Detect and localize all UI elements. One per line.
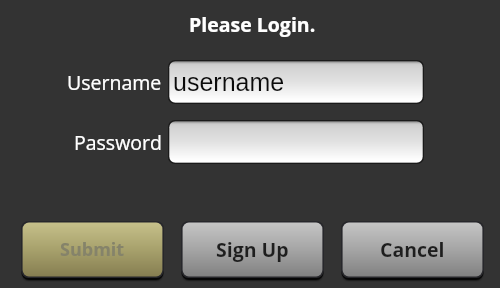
staticText: Sign Up [216, 236, 289, 263]
button[interactable] [168, 120, 424, 164]
staticText: Password [74, 129, 162, 156]
staticText: Username [67, 69, 162, 96]
staticText: Please Login. [189, 11, 316, 38]
button[interactable]: Submit [21, 221, 164, 282]
staticText: Cancel [380, 236, 445, 263]
button[interactable]: Sign Up [181, 221, 324, 282]
staticText: Submit [60, 237, 125, 262]
button[interactable]: Cancel [341, 221, 484, 282]
button[interactable]: username [168, 60, 424, 104]
staticText: username [173, 68, 285, 96]
